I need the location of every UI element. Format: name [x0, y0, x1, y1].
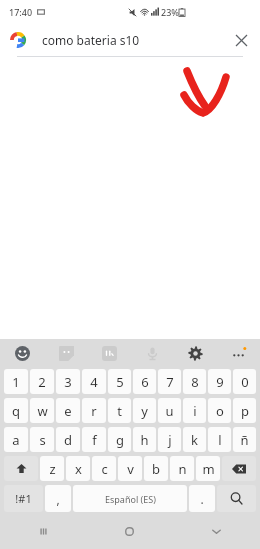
button[interactable]: s — [30, 427, 54, 452]
button[interactable]: Recent apps — [0, 514, 86, 549]
button[interactable]: n — [170, 456, 194, 481]
staticText: 4 — [90, 373, 98, 391]
staticText: 8 — [191, 373, 199, 391]
button[interactable]: g — [108, 427, 131, 452]
button[interactable]: ñ — [233, 427, 256, 452]
button[interactable]: Stickers — [44, 339, 88, 367]
button[interactable]: i — [183, 398, 206, 423]
button[interactable]: m — [196, 456, 220, 481]
button[interactable]: 7 — [158, 369, 181, 394]
button[interactable]: e — [56, 398, 80, 423]
button[interactable]: c — [92, 456, 116, 481]
button[interactable]: r — [82, 398, 106, 423]
staticText: p — [241, 402, 249, 420]
staticText: 17:40 — [9, 6, 33, 18]
staticText: g — [116, 431, 124, 449]
button[interactable]: 2 — [30, 369, 54, 394]
staticText: 0 — [241, 373, 249, 391]
staticText: m — [202, 460, 215, 478]
button[interactable]: x — [66, 456, 90, 481]
button[interactable]: !#1 — [4, 485, 43, 512]
staticText: o — [216, 402, 224, 420]
button[interactable]: a — [4, 427, 28, 452]
staticText: h — [140, 431, 149, 449]
staticText: !#1 — [15, 491, 32, 506]
staticText: r — [91, 402, 97, 420]
staticText: q — [12, 402, 20, 420]
button[interactable]: 4 — [82, 369, 106, 394]
staticText: , — [56, 491, 60, 507]
button[interactable]: 5 — [108, 369, 131, 394]
button[interactable]: k — [183, 427, 206, 452]
staticText: 2 — [38, 373, 46, 391]
staticText: 9 — [216, 373, 224, 391]
staticText: y — [141, 402, 148, 420]
staticText: 6 — [141, 373, 149, 391]
staticText: k — [191, 431, 198, 449]
button[interactable]: f — [82, 427, 106, 452]
staticText: 7 — [166, 373, 174, 391]
button[interactable]: 6 — [133, 369, 156, 394]
staticText: v — [127, 460, 134, 478]
button[interactable]: Settings — [174, 339, 217, 367]
staticText: ñ — [240, 431, 249, 449]
button[interactable]: 8 — [183, 369, 206, 394]
button[interactable]: u — [158, 398, 181, 423]
staticText: x — [75, 460, 82, 478]
staticText: como bateria s10 — [42, 32, 228, 48]
button[interactable]: w — [30, 398, 54, 423]
staticText: Español (ES) — [105, 493, 156, 505]
staticText: 3 — [64, 373, 72, 391]
staticText: i — [193, 402, 197, 420]
staticText: 23% — [161, 6, 179, 18]
staticText: b — [152, 460, 160, 478]
staticText: n — [178, 460, 187, 478]
staticText: w — [37, 402, 48, 420]
staticText: t — [117, 402, 122, 420]
staticText: u — [165, 402, 174, 420]
button[interactable]: t — [108, 398, 131, 423]
button[interactable]: Google — [9, 31, 27, 49]
staticText: s — [39, 431, 46, 449]
button[interactable]: Hide keyboard — [173, 514, 260, 549]
staticText: d — [64, 431, 72, 449]
button[interactable]: p — [233, 398, 256, 423]
staticText: 1 — [12, 373, 20, 391]
button[interactable]: 0 — [233, 369, 256, 394]
button[interactable]: Emoji — [0, 339, 44, 367]
button[interactable]: l — [208, 427, 231, 452]
staticText: a — [12, 431, 20, 449]
staticText: f — [92, 431, 97, 449]
button[interactable]: q — [4, 398, 28, 423]
button[interactable]: 9 — [208, 369, 231, 394]
button[interactable]: h — [133, 427, 156, 452]
button[interactable]: Shift — [4, 456, 38, 481]
button[interactable]: Home — [86, 514, 173, 549]
button[interactable]: j — [158, 427, 181, 452]
button[interactable]: 1 — [4, 369, 28, 394]
button[interactable]: Backspace — [222, 456, 256, 481]
button[interactable]: Voice input — [131, 339, 174, 367]
button[interactable]: More options — [217, 339, 260, 367]
staticText: 5 — [116, 373, 124, 391]
button[interactable]: b — [144, 456, 168, 481]
staticText: c — [101, 460, 108, 478]
button[interactable]: z — [40, 456, 64, 481]
button[interactable]: o — [208, 398, 231, 423]
button[interactable]: . — [189, 485, 215, 512]
button[interactable]: Español (ES) — [73, 485, 187, 512]
staticText: z — [49, 460, 56, 478]
button[interactable]: Clear — [228, 27, 254, 53]
button[interactable]: , — [45, 485, 71, 512]
staticText: e — [64, 402, 72, 420]
button[interactable]: Search — [217, 485, 256, 512]
button[interactable]: y — [133, 398, 156, 423]
button[interactable]: v — [118, 456, 142, 481]
button[interactable]: 3 — [56, 369, 80, 394]
staticText: . — [200, 491, 204, 507]
button[interactable]: GIF — [88, 339, 131, 367]
button[interactable]: d — [56, 427, 80, 452]
staticText: j — [168, 431, 172, 449]
staticText: l — [218, 431, 222, 449]
